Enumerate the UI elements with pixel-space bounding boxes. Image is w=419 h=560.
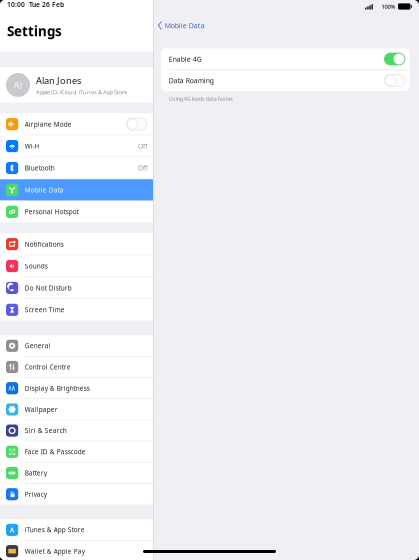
staticText: Siri & Search [25,426,67,435]
button[interactable]: Data Roaming [161,70,410,91]
staticText: Airplane Mode [25,120,72,128]
staticText: Privacy [25,490,47,498]
button[interactable]: Display & Brightness [0,378,153,398]
staticText: Apple ID, iCloud, iTunes & App Store [36,88,127,96]
staticText: Do Not Disturb [25,284,72,292]
staticText: Notifications [25,240,64,248]
staticText: iTunes & App Store [25,525,85,534]
button[interactable]: Siri & Search [0,420,153,441]
staticText: Display & Brightness [25,384,90,392]
button[interactable]: Personal Hotspot [0,201,153,222]
button[interactable]: Wallet & Apple Pay [0,541,153,560]
button[interactable]: Bluetooth [0,157,153,179]
button[interactable]: General [0,335,153,356]
staticText: Data Roaming [169,76,214,85]
button[interactable]: Airplane Mode [0,113,153,135]
staticText: Control Centre [25,363,71,371]
staticText: Tue 26 Feb [29,0,64,9]
button[interactable]: Wi-Fi [0,135,153,157]
staticText: Screen Time [25,305,65,314]
button[interactable]: Do Not Disturb [0,277,153,299]
staticText: Mobile Data [25,186,64,194]
button[interactable]: Screen Time [0,299,153,320]
staticText: Wallet & Apple Pay [25,547,85,555]
button[interactable]: Control Centre [0,357,153,377]
button[interactable]: Sounds [0,255,153,277]
staticText: Personal Hotspot [25,207,79,216]
staticText: Enable 4G [169,54,202,64]
staticText: Wallpaper [25,405,58,414]
button[interactable]: Face ID & Passcode [0,441,153,462]
button[interactable]: Notifications [0,233,153,255]
button[interactable]: Mobile Data [154,14,419,36]
staticText: Bluetooth [25,164,55,172]
staticText: Wi-Fi [25,142,40,150]
button[interactable]: Wallpaper [0,399,153,420]
button[interactable]: Mobile Data [0,179,153,201]
staticText: AJ [14,80,22,90]
staticText: Face ID & Passcode [25,447,86,456]
button[interactable]: Privacy [0,484,153,504]
button[interactable]: Enable 4G [161,48,410,69]
staticText: Battery [25,469,47,477]
staticText: Using 4G loads data faster. [169,95,233,102]
staticText: Mobile Data [165,21,205,30]
button[interactable]: Battery [0,463,153,483]
staticText: Off [138,164,147,172]
staticText: Alan Jones [36,74,81,87]
staticText: 100% [381,3,395,10]
staticText: General [25,341,51,350]
staticText: Off [138,142,147,150]
staticText: Sounds [25,262,48,270]
button[interactable]: iTunes & App Store [0,519,153,540]
staticText: 10:00 [7,0,25,9]
staticText: Settings [7,22,62,40]
button[interactable]: AJ [0,67,153,102]
